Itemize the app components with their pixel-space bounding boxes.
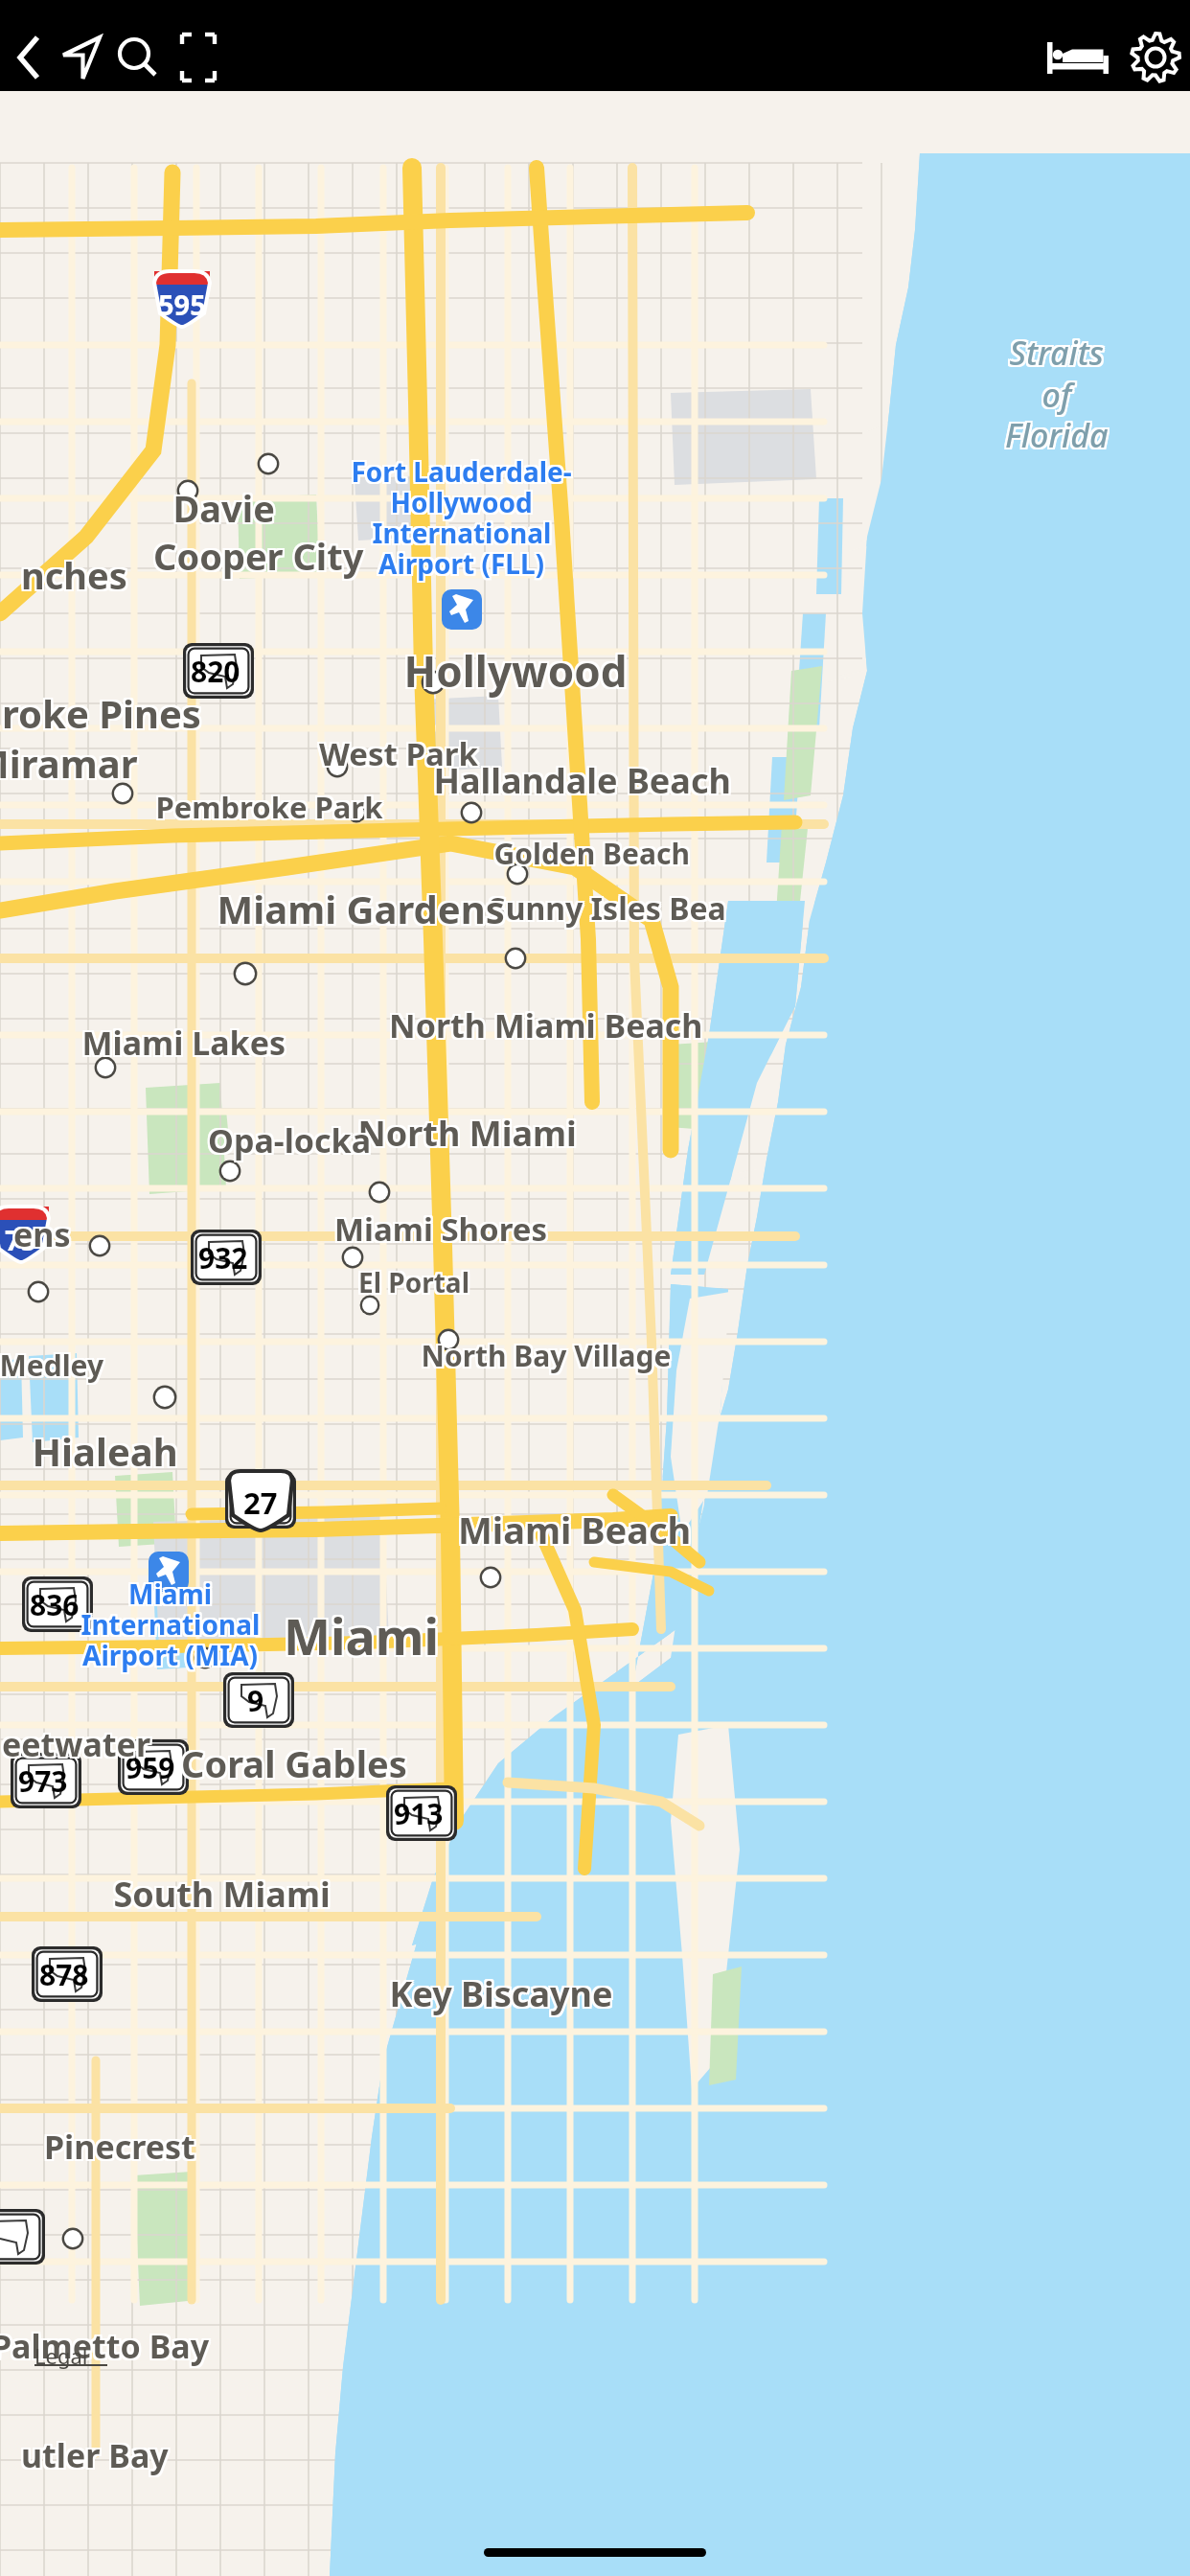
button[interactable]: Current location (56, 31, 107, 84)
button[interactable]: Settings (1129, 31, 1182, 84)
button[interactable]: Back (4, 31, 54, 84)
button[interactable]: Search (111, 31, 163, 84)
button[interactable]: Hotels (1050, 31, 1106, 84)
button[interactable]: Scan (172, 31, 224, 84)
button[interactable] (0, 0, 1190, 2576)
